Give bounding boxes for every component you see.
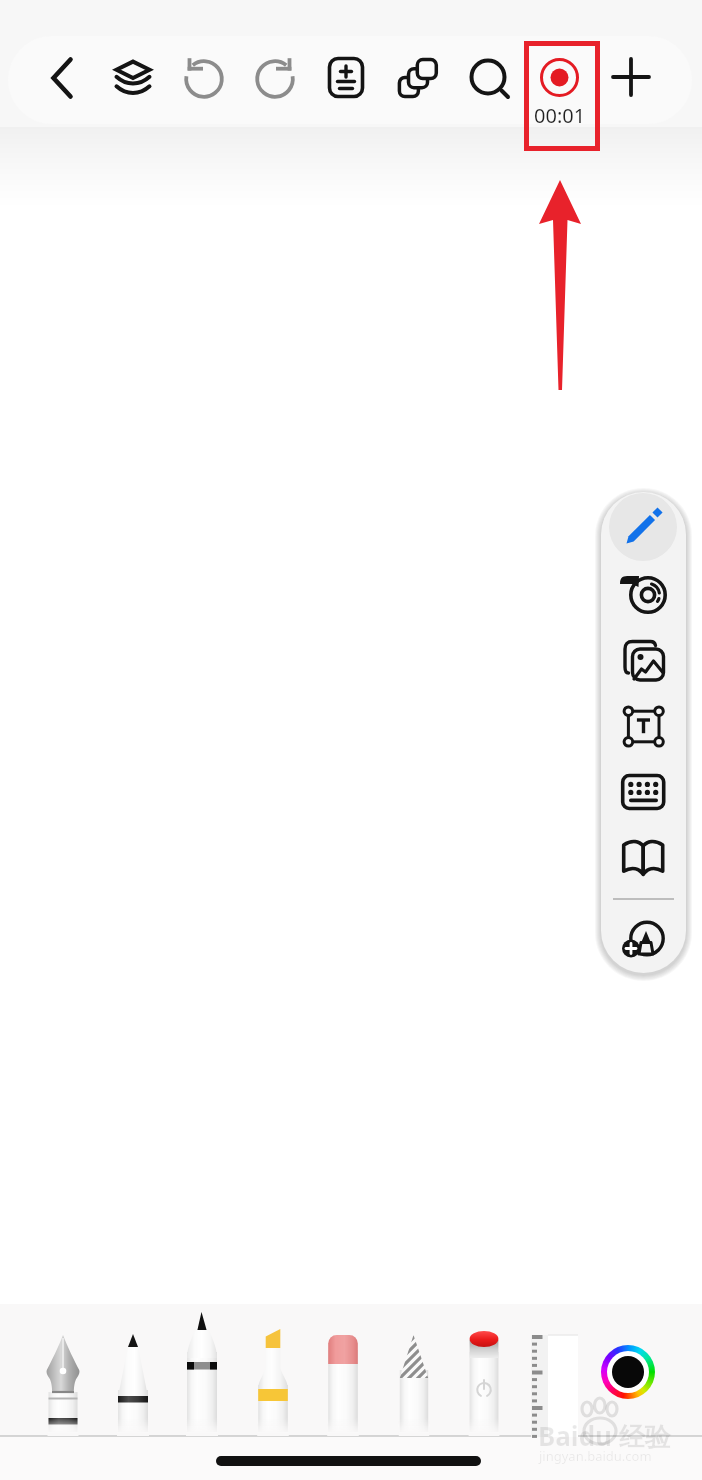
button[interactable]: Laser pointer xyxy=(452,1310,518,1438)
button[interactable]: Colour picker xyxy=(594,1338,662,1406)
button[interactable]: Record xyxy=(527,44,595,124)
button[interactable]: Layers xyxy=(109,54,157,102)
button[interactable]: Technical pen xyxy=(170,1300,236,1438)
button[interactable]: Pencil xyxy=(101,1310,167,1438)
button[interactable]: Search xyxy=(464,54,512,102)
button[interactable]: Redo xyxy=(251,54,299,102)
button[interactable]: Duplicate xyxy=(394,54,442,102)
button[interactable]: Eraser xyxy=(311,1310,377,1438)
button[interactable]: Pen xyxy=(609,493,677,561)
button[interactable]: Crayon xyxy=(382,1310,448,1438)
button[interactable]: Tape xyxy=(603,566,684,628)
button[interactable]: Ruler xyxy=(524,1310,590,1438)
button[interactable]: Text box xyxy=(603,698,684,760)
staticText: jingyan.baidu.com xyxy=(539,1447,652,1465)
button[interactable]: Add tool xyxy=(603,908,684,970)
button[interactable]: Add page xyxy=(607,54,655,102)
button[interactable]: Keyboard xyxy=(603,763,684,825)
button[interactable]: Page options xyxy=(322,54,370,102)
staticText: 00:01 xyxy=(534,102,586,129)
button[interactable]: Undo xyxy=(180,54,228,102)
button[interactable]: Highlighter xyxy=(241,1310,307,1438)
button[interactable]: Back xyxy=(38,54,86,102)
button[interactable]: Insert image xyxy=(603,632,684,694)
staticText: Baidu 经验 xyxy=(538,1418,671,1454)
button[interactable]: Notebook xyxy=(603,829,684,891)
button[interactable]: Fountain pen xyxy=(30,1310,96,1438)
